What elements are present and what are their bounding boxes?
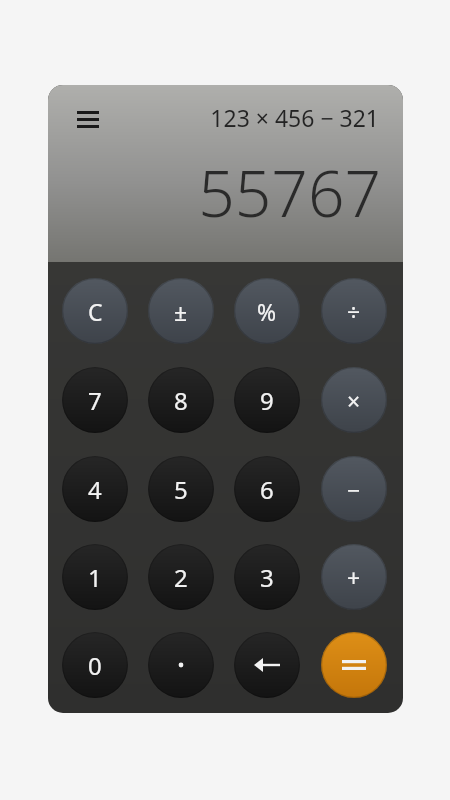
- staticText: 1: [88, 561, 102, 594]
- button[interactable]: C: [62, 278, 128, 344]
- staticText: ÷: [347, 296, 361, 327]
- button[interactable]: 3: [234, 544, 300, 610]
- staticText: 2: [174, 561, 188, 594]
- button[interactable]: ÷: [321, 278, 387, 344]
- button[interactable]: Menu: [64, 95, 112, 143]
- button[interactable]: 5: [148, 456, 214, 522]
- button[interactable]: ±: [148, 278, 214, 344]
- staticText: 5: [174, 473, 188, 506]
- button[interactable]: +: [321, 544, 387, 610]
- staticText: −: [347, 474, 361, 505]
- button[interactable]: 0: [62, 632, 128, 698]
- staticText: ×: [347, 385, 361, 416]
- staticText: C: [88, 296, 103, 327]
- staticText: 123 × 456 − 321: [210, 102, 379, 133]
- button[interactable]: 2: [148, 544, 214, 610]
- button[interactable]: 9: [234, 367, 300, 433]
- button[interactable]: Equals: [321, 632, 387, 698]
- button[interactable]: 1: [62, 544, 128, 610]
- staticText: 0: [88, 649, 102, 682]
- staticText: 8: [174, 384, 188, 417]
- staticText: ±: [174, 296, 188, 327]
- staticText: +: [347, 562, 361, 593]
- staticText: 7: [88, 384, 102, 417]
- button[interactable]: 4: [62, 456, 128, 522]
- button[interactable]: Backspace: [234, 632, 300, 698]
- staticText: %: [257, 296, 277, 327]
- staticText: 3: [260, 561, 274, 594]
- staticText: 4: [88, 473, 102, 506]
- button[interactable]: %: [234, 278, 300, 344]
- staticText: 6: [260, 473, 274, 506]
- button[interactable]: 8: [148, 367, 214, 433]
- button[interactable]: −: [321, 456, 387, 522]
- button[interactable]: 6: [234, 456, 300, 522]
- button[interactable]: ×: [321, 367, 387, 433]
- button[interactable]: [148, 632, 214, 698]
- staticText: 9: [260, 384, 274, 417]
- button[interactable]: 7: [62, 367, 128, 433]
- staticText: 55767: [198, 149, 381, 236]
